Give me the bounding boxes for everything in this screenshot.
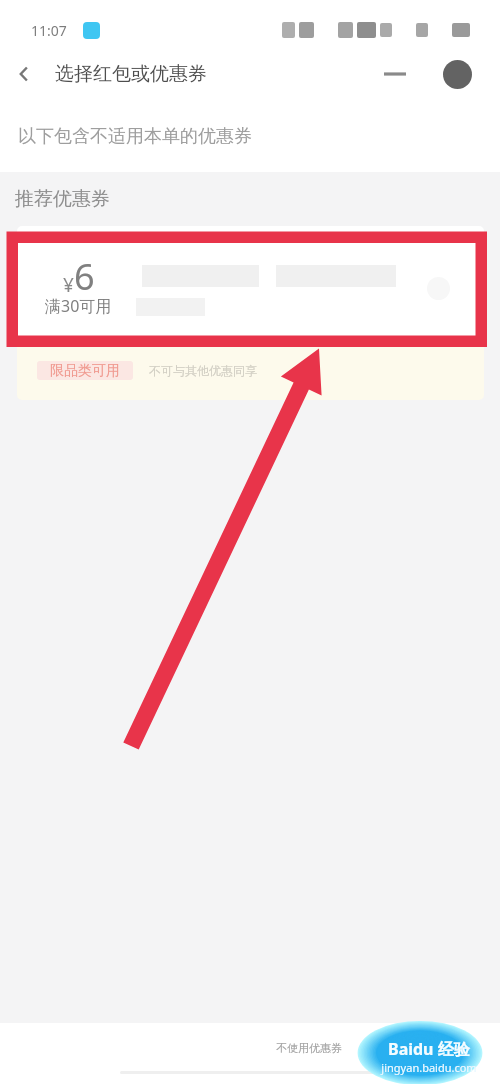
staticText: 限品类可用: [50, 362, 120, 380]
button[interactable]: ¥: [17, 226, 484, 400]
staticText: 6: [74, 252, 95, 301]
staticText: 以下包含不适用本单的优惠券: [18, 125, 252, 148]
staticText: Baidu 经验: [388, 1038, 470, 1060]
button[interactable]: Minimize: [379, 58, 411, 90]
staticText: ¥: [63, 272, 74, 298]
button[interactable]: Back: [0, 50, 48, 98]
staticText: 推荐优惠券: [15, 187, 110, 211]
button[interactable]: 不使用优惠券: [276, 1041, 342, 1055]
staticText: 满30可用: [45, 295, 112, 317]
staticText: 选择红包或优惠券: [55, 62, 207, 86]
staticText: jingyan.baidu.com: [381, 1060, 477, 1075]
staticText: 11:07: [31, 21, 67, 40]
staticText: 不可与其他优惠同享: [149, 363, 257, 378]
staticText: 不使用优惠券: [276, 1041, 342, 1055]
button[interactable]: Close: [443, 60, 472, 89]
